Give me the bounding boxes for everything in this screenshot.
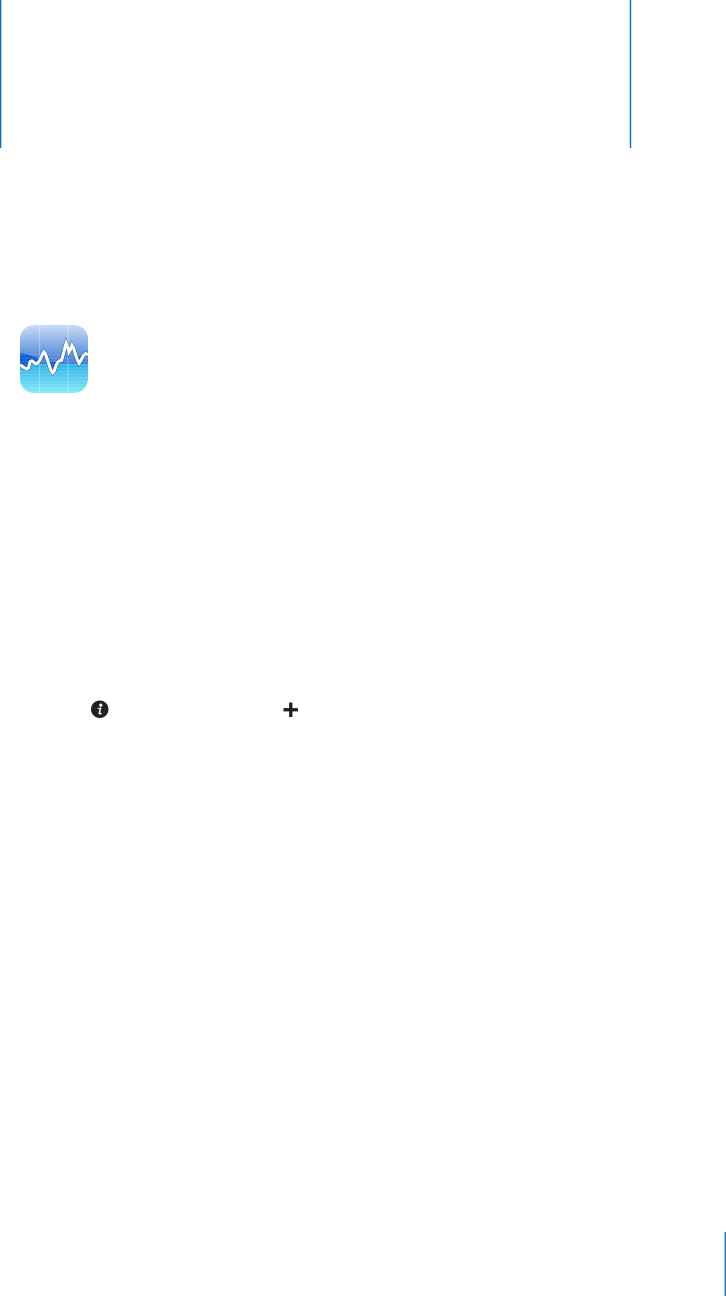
button[interactable]: Add — [283, 702, 298, 717]
button[interactable]: Info — [91, 700, 108, 718]
